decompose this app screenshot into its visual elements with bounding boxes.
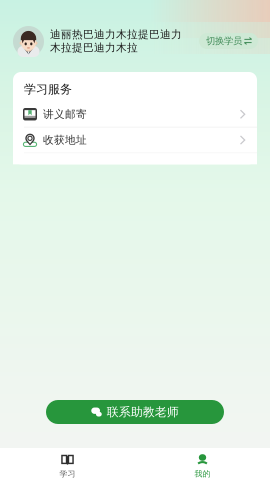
- button[interactable]: 讲义邮寄: [13, 102, 257, 127]
- button[interactable]: 学习: [0, 454, 135, 479]
- staticText: 联系助教老师: [107, 405, 179, 419]
- button[interactable]: 我的: [135, 454, 270, 479]
- staticText: 我的: [194, 469, 210, 479]
- button[interactable]: 切换学员: [199, 33, 258, 49]
- staticText: 收获地址: [43, 133, 87, 147]
- staticText: 切换学员: [206, 35, 242, 47]
- staticText: 讲义邮寄: [43, 108, 87, 121]
- staticText: 学习: [59, 469, 75, 479]
- button[interactable]: 联系助教老师: [46, 400, 224, 424]
- staticText: 迪丽热巴迪力木拉提巴迪力木拉提巴迪力木拉: [50, 28, 182, 54]
- staticText: 学习服务: [24, 82, 72, 97]
- button[interactable]: 收获地址: [13, 127, 257, 153]
